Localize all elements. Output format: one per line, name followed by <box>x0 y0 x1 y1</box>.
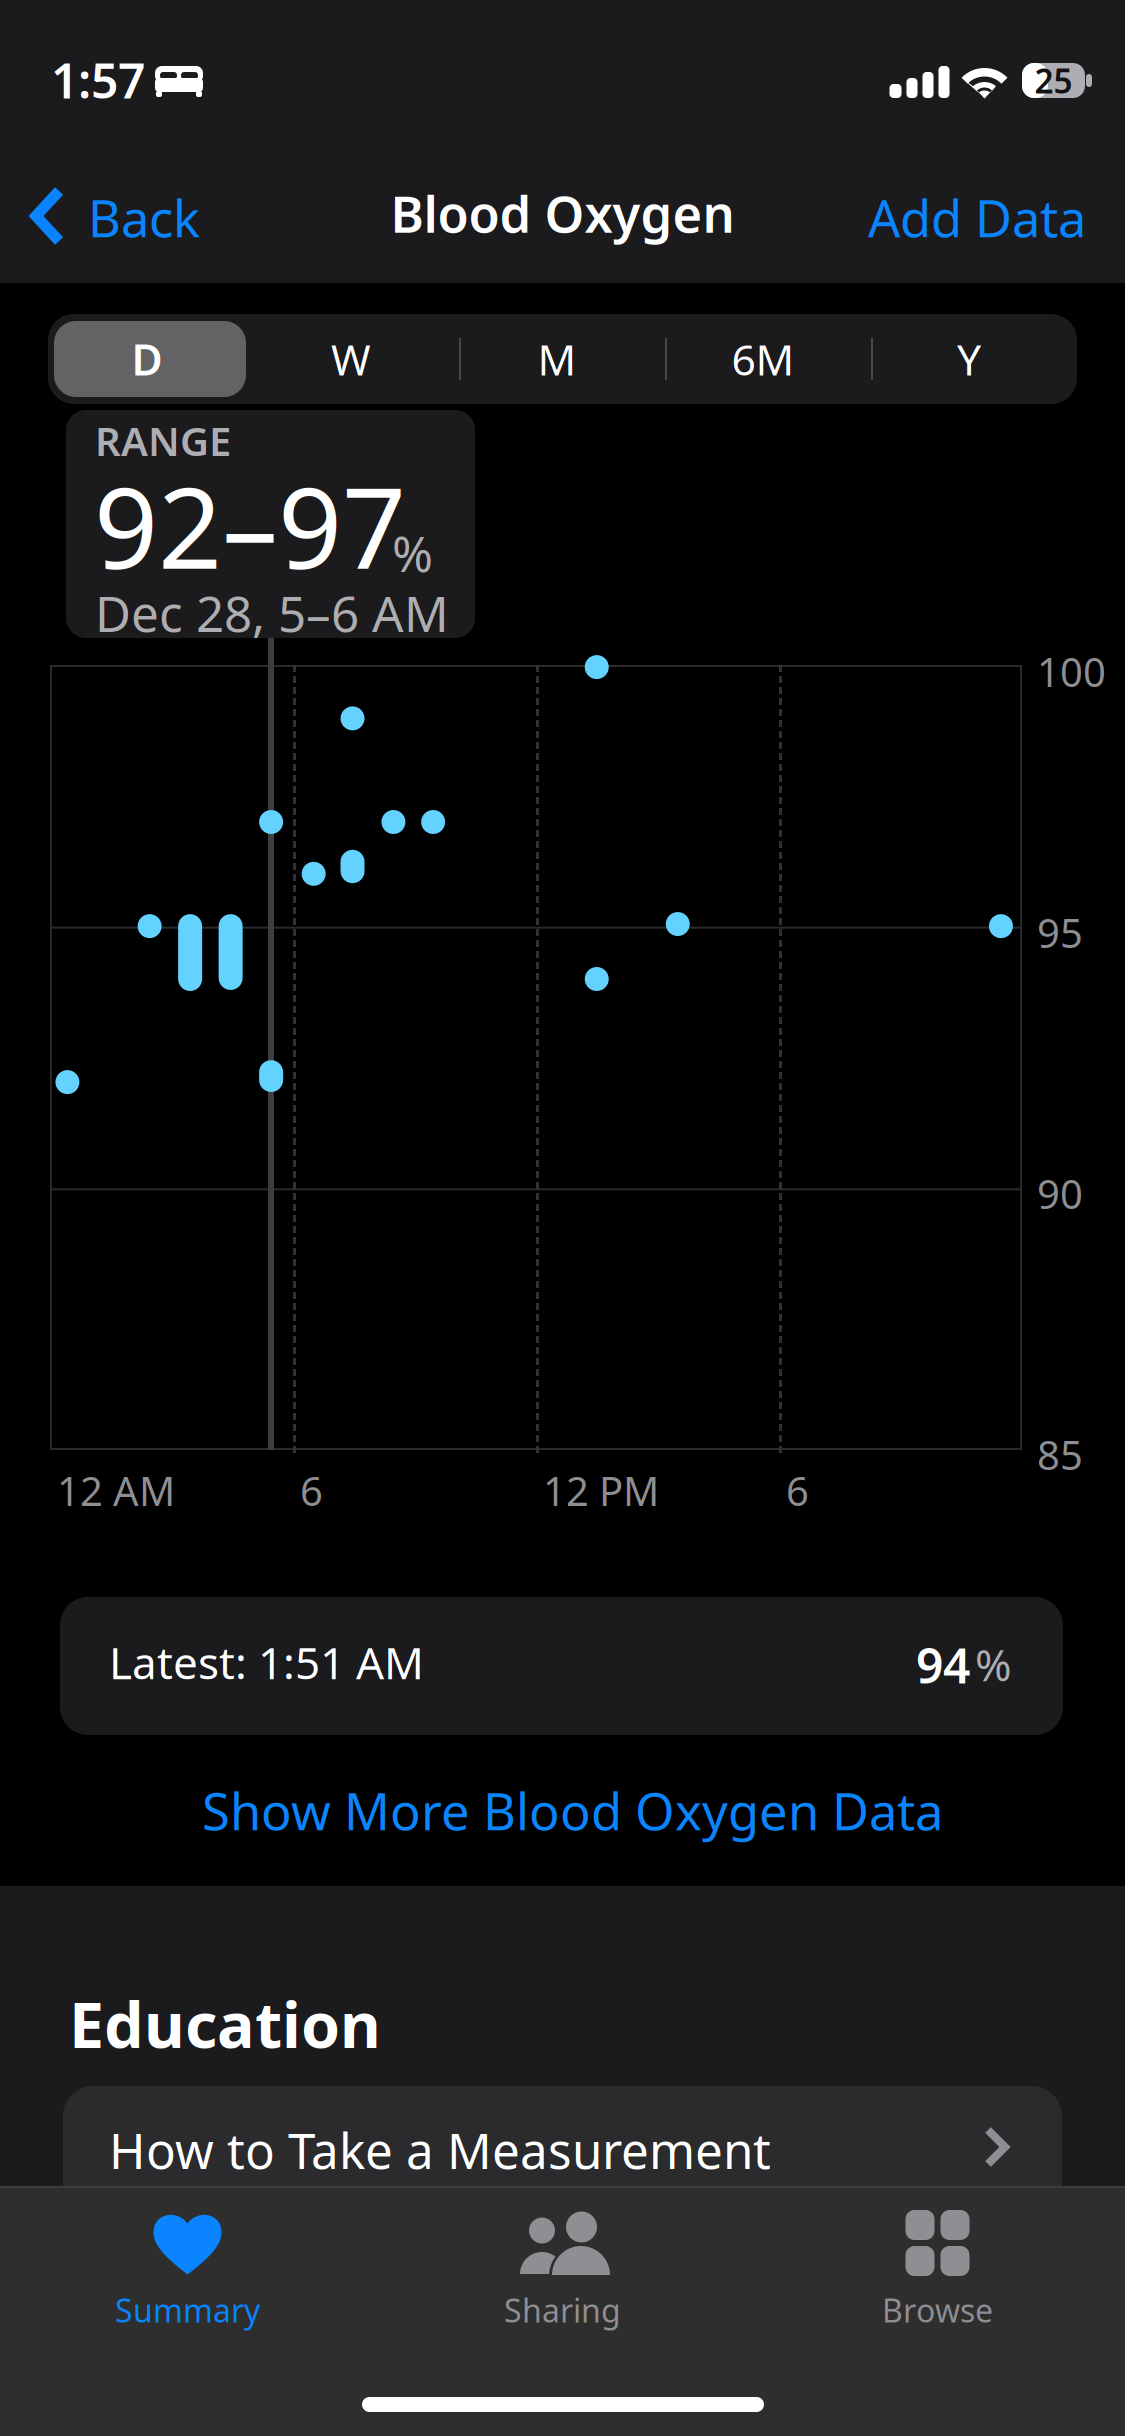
button[interactable]: M <box>454 314 660 404</box>
button[interactable]: W <box>248 314 454 404</box>
staticText: W <box>331 331 371 387</box>
button[interactable]: 6M <box>660 314 866 404</box>
staticText: Browse <box>882 2289 993 2331</box>
staticText: 1:57 <box>51 48 145 112</box>
staticText: % <box>975 1635 1012 1693</box>
staticText: 100 <box>1037 645 1106 698</box>
staticText: RANGE <box>95 414 231 467</box>
button[interactable]: Summary <box>0 2186 375 2336</box>
staticText: 95 <box>1037 906 1083 959</box>
staticText: D <box>131 331 162 387</box>
staticText: M <box>537 331 576 387</box>
staticText: 85 <box>1037 1428 1083 1481</box>
button[interactable]: Sharing <box>375 2186 750 2336</box>
staticText: Add Data <box>868 184 1086 251</box>
staticText: 6 <box>300 1464 323 1517</box>
button[interactable]: Browse <box>750 2186 1125 2336</box>
staticText: Education <box>69 1982 381 2065</box>
staticText: Show More Blood Oxygen Data <box>202 1777 943 1844</box>
staticText: 12 PM <box>543 1464 659 1517</box>
staticText: 94 <box>916 1633 970 1697</box>
button[interactable]: Back <box>0 132 224 252</box>
staticText: Y <box>957 331 981 387</box>
button[interactable]: How to Take a Measurement <box>63 2086 1062 2186</box>
staticText: Blood Oxygen <box>390 179 734 247</box>
staticText: 92–97 <box>94 451 406 600</box>
staticText: How to Take a Measurement <box>109 2117 771 2182</box>
staticText: 90 <box>1037 1167 1083 1220</box>
staticText: 6M <box>731 331 794 387</box>
staticText: Latest: 1:51 AM <box>109 1633 424 1691</box>
button[interactable]: D <box>44 314 250 404</box>
staticText: 12 AM <box>57 1464 175 1517</box>
button[interactable]: Y <box>866 314 1072 404</box>
staticText: Sharing <box>504 2289 621 2331</box>
staticText: Dec 28, 5–6 AM <box>95 580 449 645</box>
staticText: Summary <box>115 2289 260 2331</box>
button[interactable]: Show More Blood Oxygen Data <box>190 1754 950 1854</box>
staticText: 25 <box>1034 58 1072 103</box>
button[interactable]: Add Data <box>845 132 1125 252</box>
staticText: 6 <box>786 1464 809 1517</box>
staticText: Back <box>88 184 200 251</box>
staticText: % <box>392 520 433 585</box>
